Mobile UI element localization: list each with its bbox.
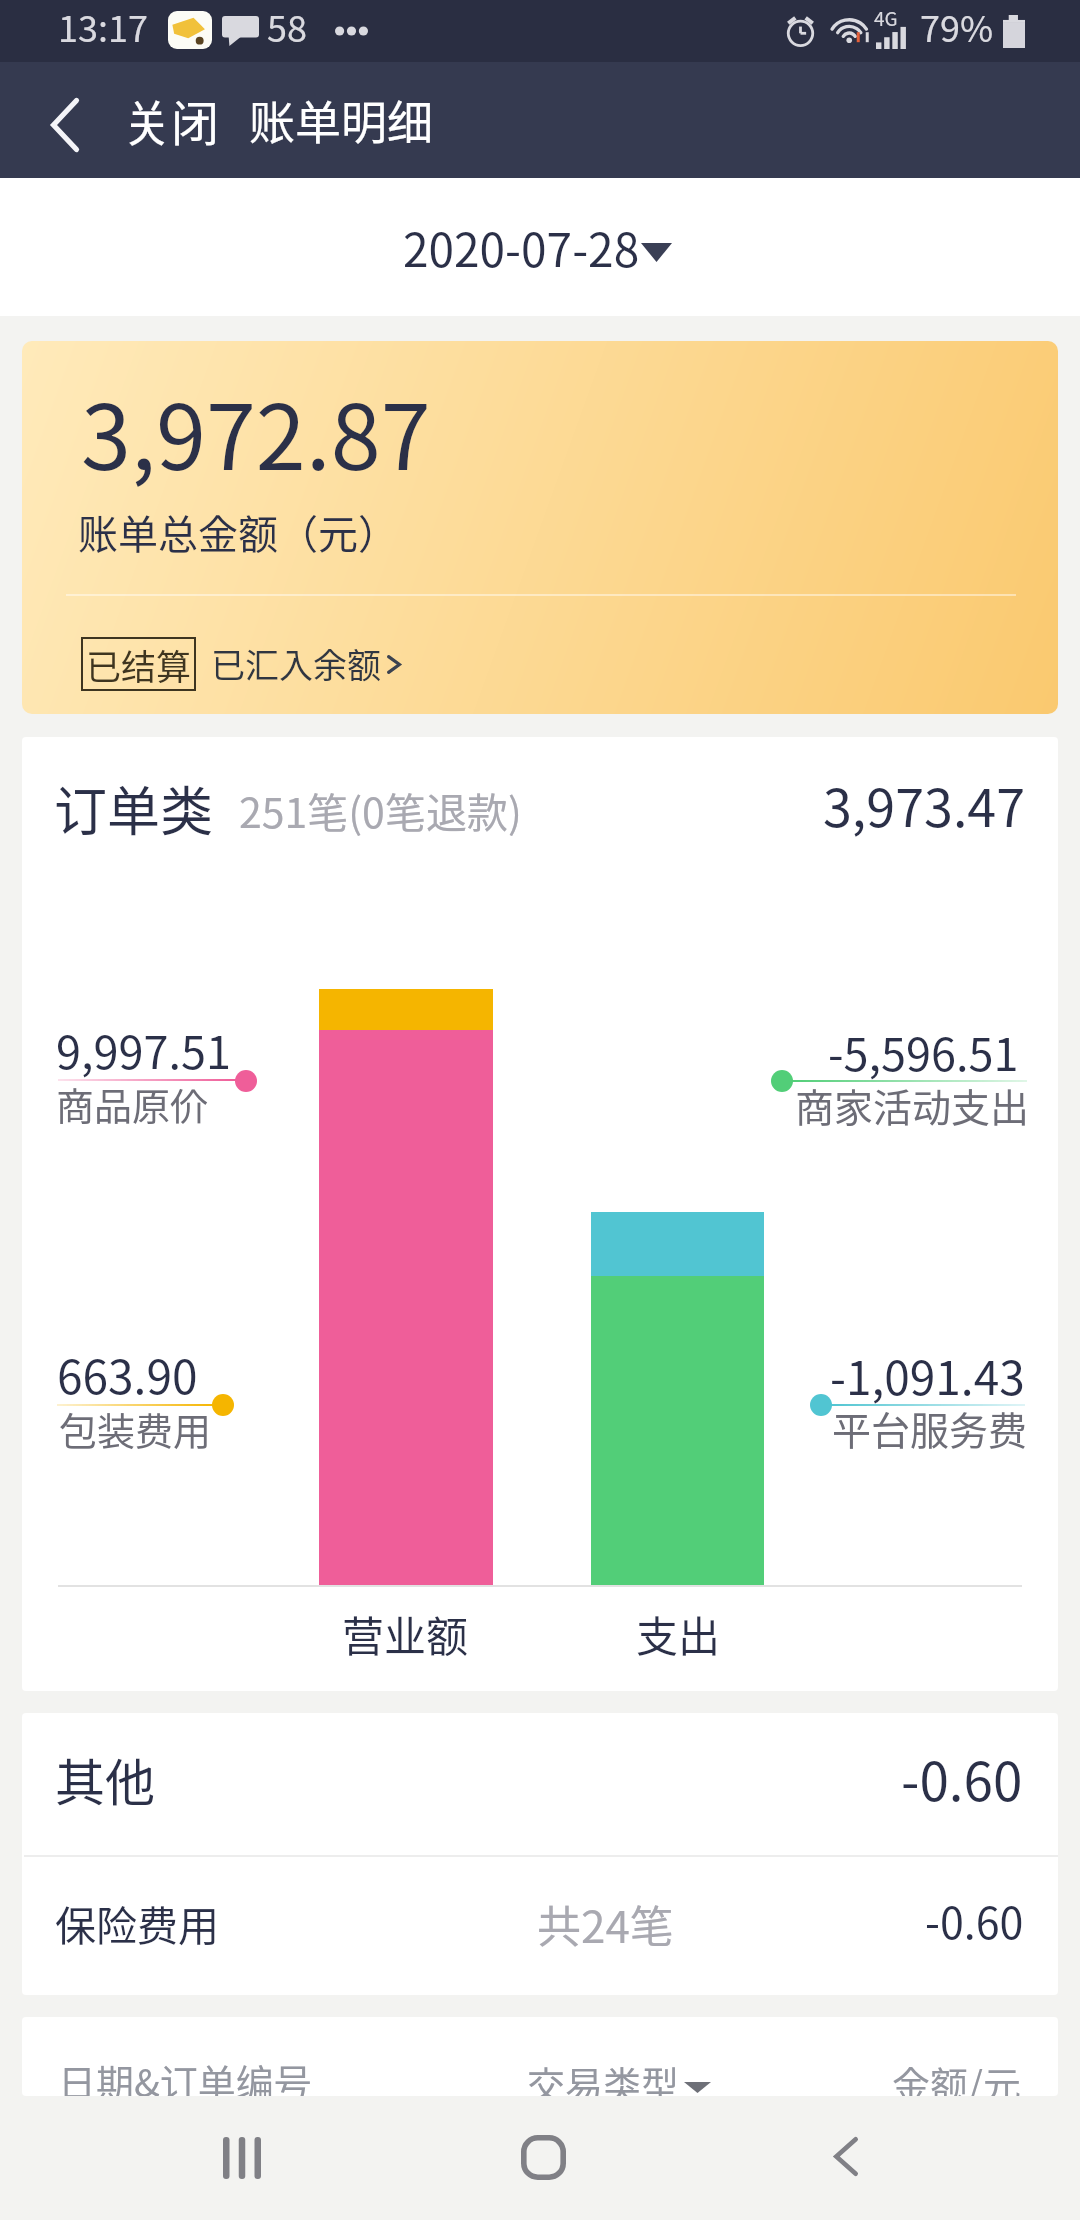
staticText: 金额/元 bbox=[892, 2055, 1021, 2096]
staticText: 账单总金额（元） bbox=[78, 503, 398, 561]
staticText: 79% bbox=[920, 0, 994, 52]
staticText: 已汇入余额 bbox=[211, 639, 381, 688]
staticText: 商品原价 bbox=[56, 1076, 209, 1131]
staticText: 保险费用 bbox=[55, 1893, 219, 1952]
staticText: 9,997.51 bbox=[56, 1017, 231, 1082]
staticText: 2020-07-28 bbox=[403, 214, 640, 281]
button[interactable]: 订单类 bbox=[22, 737, 1058, 857]
staticText: 包装费用 bbox=[59, 1401, 212, 1456]
button[interactable]: 其他 bbox=[22, 1713, 1058, 1855]
staticText: 已结算 bbox=[86, 639, 192, 690]
staticText: 共24笔 bbox=[537, 1892, 674, 1956]
button[interactable]: 3,972.87 bbox=[22, 341, 1058, 714]
staticText: 58 bbox=[267, 0, 307, 52]
button[interactable]: Home bbox=[484, 2108, 604, 2208]
staticText: 支出 bbox=[636, 1603, 721, 1664]
button[interactable]: Recent apps bbox=[182, 2108, 302, 2208]
staticText: -5,596.51 bbox=[828, 1019, 1019, 1084]
button[interactable]: 关闭 bbox=[0, 62, 97, 132]
staticText: 账单明细 bbox=[249, 86, 433, 153]
staticText: 日期&订单编号 bbox=[58, 2053, 312, 2096]
staticText: -0.60 bbox=[925, 1889, 1024, 1951]
staticText: 商家活动支出 bbox=[795, 1077, 1030, 1133]
staticText: 交易类型 bbox=[527, 2055, 680, 2096]
staticText: -0.60 bbox=[901, 1740, 1023, 1817]
staticText: 3,973.47 bbox=[823, 767, 1026, 842]
button[interactable]: Back bbox=[786, 2108, 906, 2208]
button[interactable]: Back bbox=[20, 76, 108, 164]
button[interactable] bbox=[517, 2037, 737, 2096]
button[interactable]: Select date bbox=[380, 194, 700, 302]
staticText: 订单类 bbox=[54, 770, 213, 847]
staticText: 营业额 bbox=[342, 1603, 469, 1664]
button[interactable]: 保险费用 bbox=[22, 1857, 1058, 1995]
staticText: 其他 bbox=[55, 1743, 155, 1815]
staticText: 251笔(0笔退款) bbox=[239, 780, 522, 839]
staticText: -1,091.43 bbox=[830, 1342, 1025, 1409]
staticText: 平台服务费 bbox=[832, 1400, 1028, 1456]
staticText: 4G bbox=[874, 4, 898, 32]
staticText: 663.90 bbox=[57, 1341, 198, 1408]
staticText: 3,972.87 bbox=[81, 366, 431, 496]
staticText: 13:17 bbox=[58, 0, 148, 52]
